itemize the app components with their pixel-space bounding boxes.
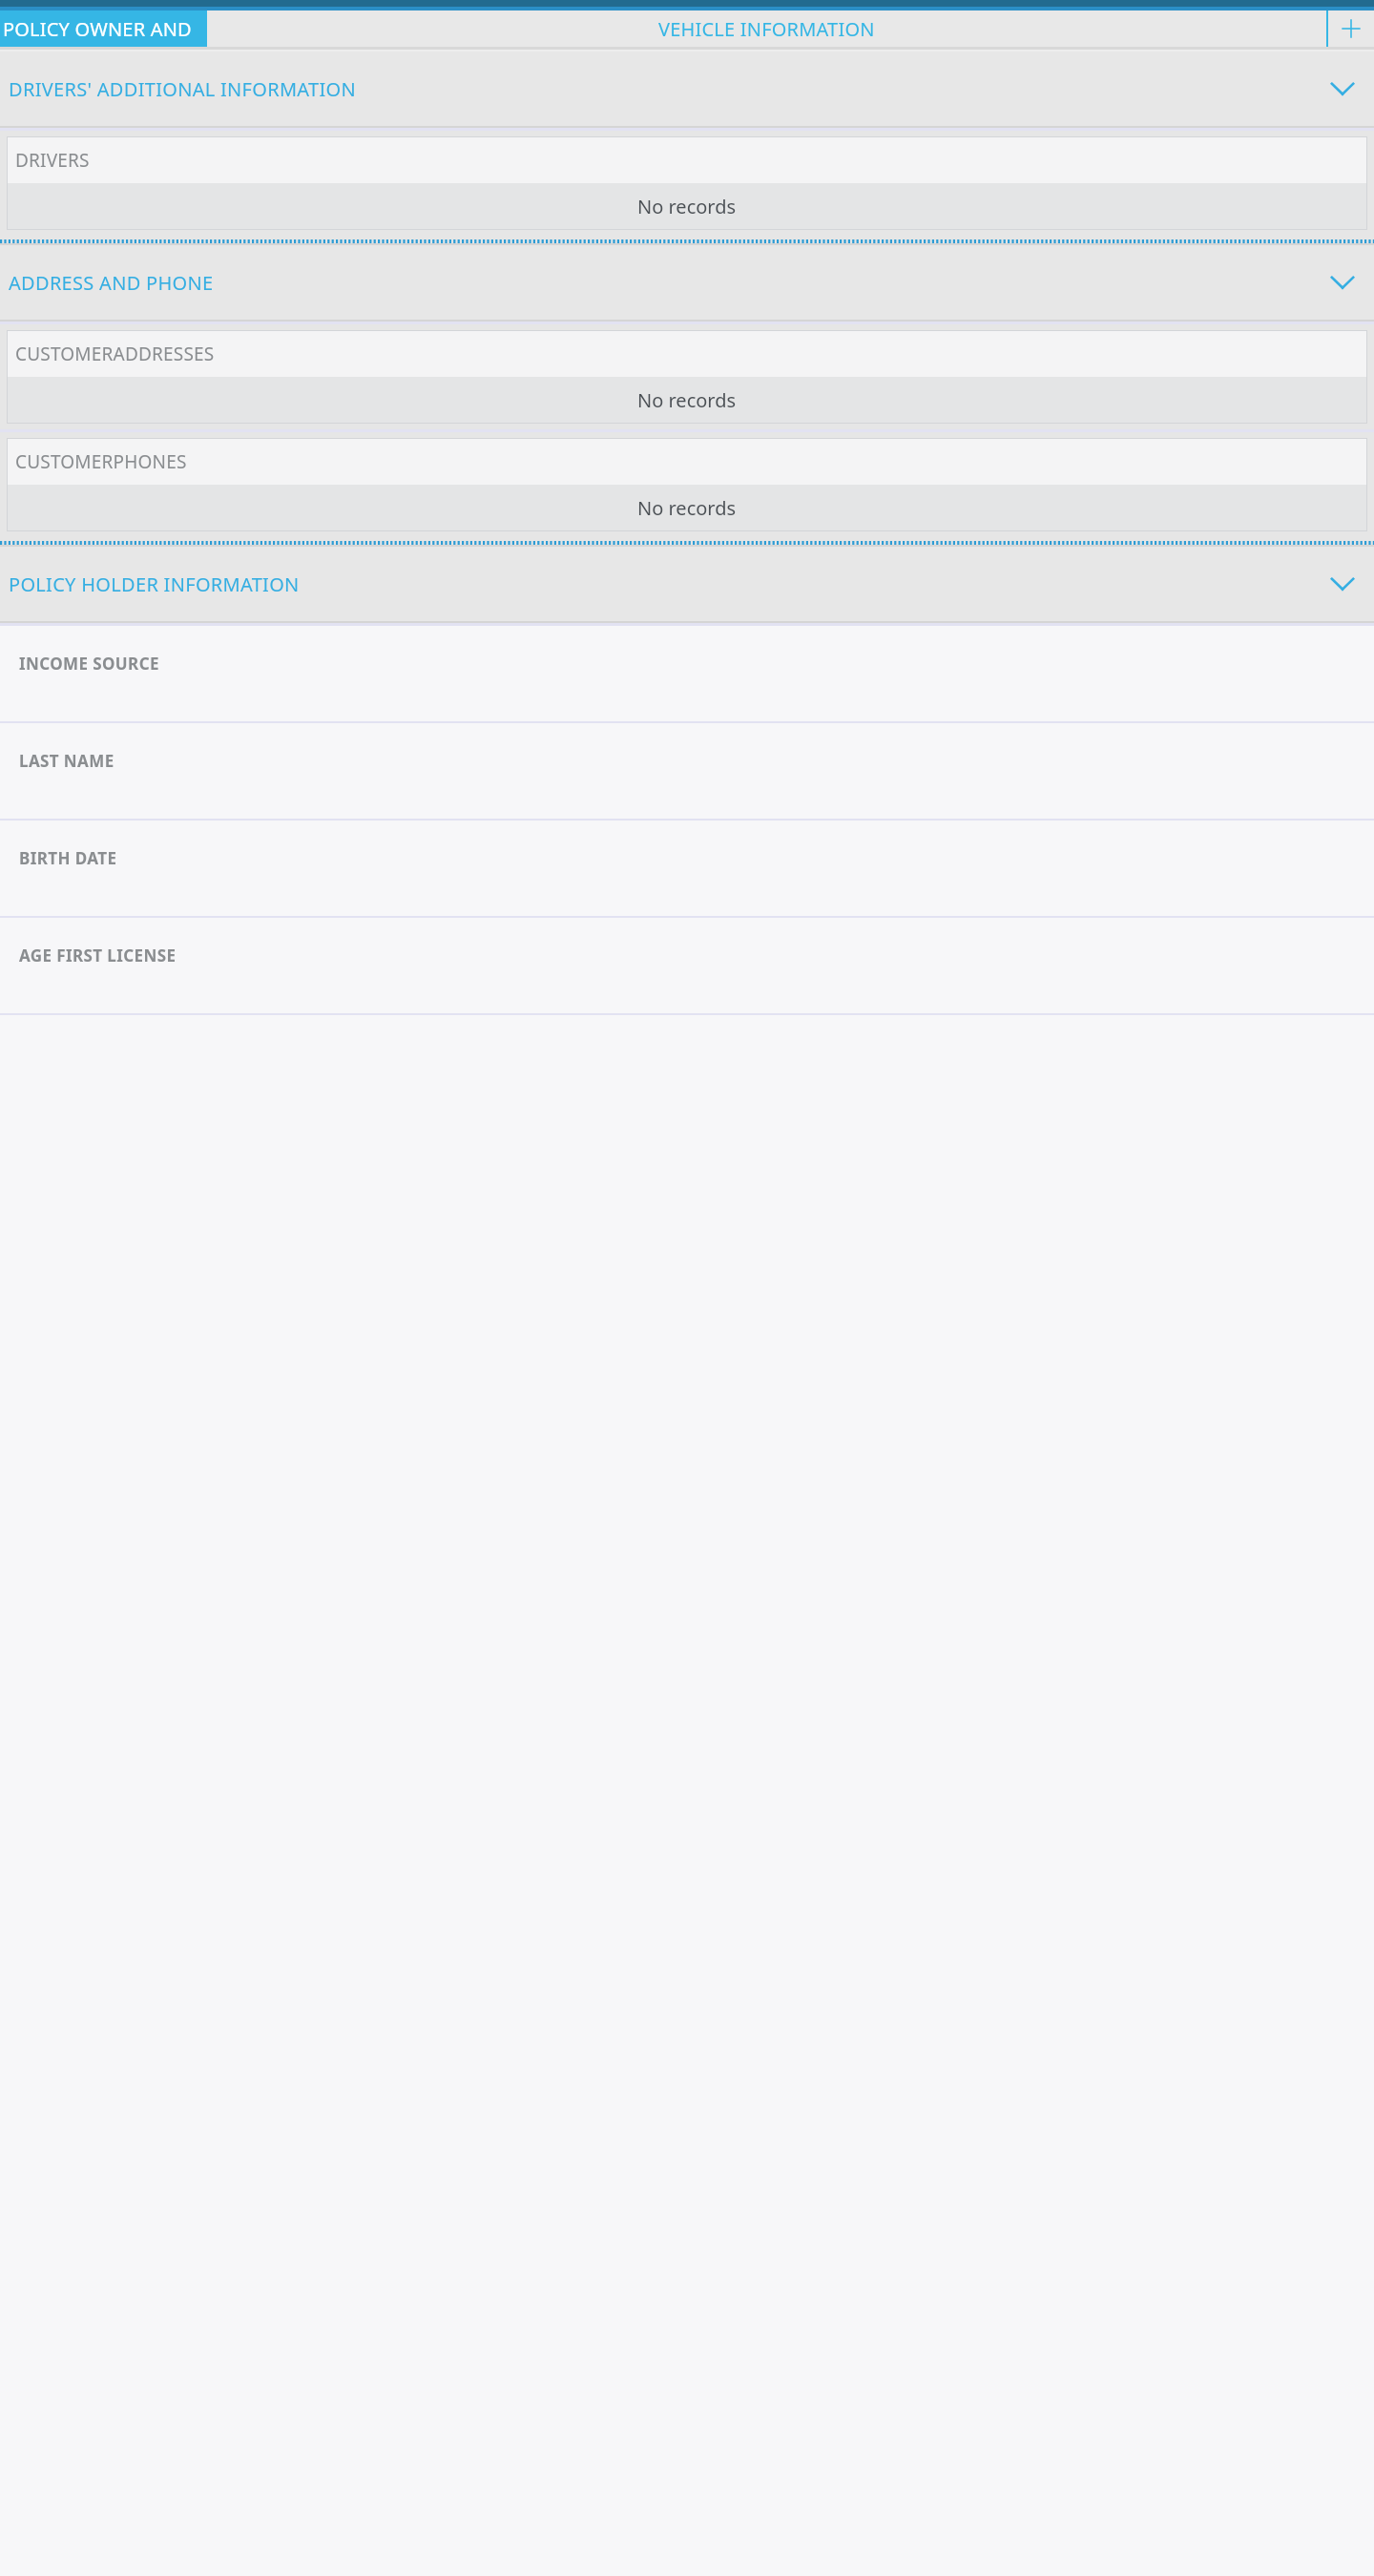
staticText: LAST NAME xyxy=(19,750,114,772)
button[interactable]: AGE FIRST LICENSE xyxy=(0,918,1374,1013)
staticText: CUSTOMERPHONES xyxy=(15,449,187,474)
button[interactable]: DRIVERS' ADDITIONAL INFORMATION xyxy=(0,52,1374,126)
staticText: ADDRESS AND PHONE xyxy=(9,270,214,296)
button[interactable]: Add tab xyxy=(1328,10,1374,47)
button[interactable]: INCOME SOURCE xyxy=(0,626,1374,721)
staticText: No records xyxy=(637,495,737,521)
button[interactable]: CUSTOMERPHONES xyxy=(7,438,1367,531)
staticText: DRIVERS' ADDITIONAL INFORMATION xyxy=(9,76,356,102)
button[interactable]: LAST NAME xyxy=(0,723,1374,819)
staticText: CUSTOMERADDRESSES xyxy=(15,342,215,366)
staticText: No records xyxy=(637,194,737,219)
staticText: AGE FIRST LICENSE xyxy=(19,945,177,966)
button[interactable]: CUSTOMERADDRESSES xyxy=(7,330,1367,424)
staticText: BIRTH DATE xyxy=(19,847,117,869)
staticText: VEHICLE INFORMATION xyxy=(658,16,875,42)
button[interactable]: VEHICLE INFORMATION xyxy=(207,10,1326,47)
button[interactable]: POLICY OWNER AND DRIVE… xyxy=(0,10,207,47)
button[interactable]: BIRTH DATE xyxy=(0,821,1374,916)
button[interactable]: POLICY HOLDER INFORMATION xyxy=(0,547,1374,621)
staticText: POLICY HOLDER INFORMATION xyxy=(9,571,300,597)
staticText: DRIVERS xyxy=(15,148,90,173)
staticText: POLICY OWNER AND DRIVE… xyxy=(3,16,204,42)
staticText: No records xyxy=(637,387,737,413)
button[interactable]: ADDRESS AND PHONE xyxy=(0,245,1374,320)
staticText: INCOME SOURCE xyxy=(19,653,159,675)
button[interactable]: DRIVERS xyxy=(7,136,1367,230)
